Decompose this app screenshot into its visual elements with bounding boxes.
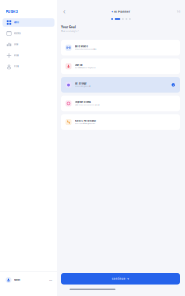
staticText: Lose Fat (75, 64, 83, 66)
button[interactable]: Kayden (0, 272, 57, 288)
staticText: Meals (14, 54, 19, 57)
staticText: Improve Fitness (75, 101, 91, 103)
button[interactable]: Continue (61, 273, 180, 284)
button[interactable]: Profile (2, 62, 54, 71)
staticText: PUSH3 (5, 9, 17, 14)
staticText: ••• (49, 278, 52, 282)
staticText: ✓ (172, 83, 174, 86)
staticText: What are you training for? (61, 30, 79, 32)
button[interactable]: Athletic Performance (61, 114, 180, 130)
staticText: Sport-specific strength & power (75, 123, 96, 124)
staticText: 1/5 (177, 10, 180, 13)
button[interactable]: Routines (2, 29, 54, 38)
staticText: ✦ (111, 10, 113, 13)
staticText: Continue (112, 277, 125, 280)
staticText: Kayden (14, 279, 20, 281)
button[interactable]: Social (2, 40, 54, 49)
button[interactable]: Back (61, 8, 68, 15)
staticText: Routines (14, 32, 21, 35)
staticText: Increase muscle size and definition (75, 48, 97, 50)
staticText: AI Planner (114, 10, 130, 13)
staticText: Build Muscle (75, 45, 88, 48)
staticText: Burn fat while preserving muscle (75, 67, 96, 69)
button[interactable]: Meals (2, 51, 54, 60)
staticText: Home (14, 21, 19, 24)
button[interactable]: Get Stronger (61, 77, 180, 93)
staticText: Your Goal (61, 25, 76, 29)
staticText: Increase strength in key lifts (75, 86, 91, 87)
staticText: Profile (14, 65, 19, 68)
staticText: Social (14, 43, 18, 46)
staticText: Athletic Performance (75, 120, 96, 122)
button[interactable]: Improve Fitness (61, 96, 180, 111)
staticText: → (126, 277, 129, 281)
button[interactable]: Build Muscle (61, 40, 180, 55)
staticText: Better endurance and overall health (75, 104, 100, 106)
button[interactable]: Home (2, 18, 54, 27)
staticText: ‹ (63, 8, 66, 16)
staticText: Get Stronger (75, 82, 87, 85)
button[interactable]: Lose Fat (61, 58, 180, 74)
